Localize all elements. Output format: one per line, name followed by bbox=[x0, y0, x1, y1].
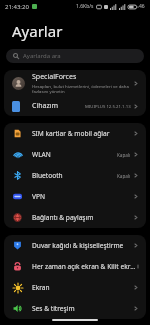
staticText: Kapalı bbox=[117, 173, 131, 179]
button[interactable]: Ekran bbox=[4, 277, 146, 298]
staticText: Kapalı bbox=[117, 152, 131, 158]
other: Aç bbox=[134, 193, 138, 200]
staticText: Duvar kağıdı & kişiselleştirme bbox=[32, 241, 124, 250]
button[interactable]: Ses & titreşim bbox=[4, 298, 146, 319]
staticText: Cihazım bbox=[32, 101, 59, 111]
staticText: Ses & titreşim bbox=[32, 304, 75, 313]
other: Aç bbox=[134, 172, 138, 179]
other: Aç bbox=[134, 151, 138, 158]
staticText: 46 bbox=[139, 3, 145, 10]
staticText: WLAN bbox=[32, 150, 51, 159]
staticText: Bağlantı & paylaşım bbox=[32, 213, 94, 222]
staticText: MIUIPLUS 12.5.21.1.13 bbox=[85, 103, 131, 109]
other: Aç bbox=[134, 130, 138, 137]
button[interactable]: Duvar kağıdı & kişiselleştirme bbox=[4, 235, 146, 256]
button[interactable]: VPN bbox=[4, 186, 146, 207]
other: Aç bbox=[134, 284, 138, 291]
button[interactable]: Ayarlarda ara bbox=[6, 49, 144, 63]
other: Aç bbox=[134, 80, 138, 87]
staticText: SIM kartlar & mobil ağlar bbox=[32, 129, 110, 138]
staticText: 21:43:20 bbox=[5, 3, 29, 11]
button[interactable]: Bluetooth bbox=[4, 165, 146, 186]
staticText: 1.6Kb/s bbox=[76, 3, 94, 10]
button[interactable]: SIM kartlar & mobil ağlar bbox=[4, 123, 146, 144]
other: Aç bbox=[134, 305, 138, 312]
staticText: Ayarlarda ara bbox=[23, 52, 61, 60]
button[interactable]: WLAN bbox=[4, 144, 146, 165]
staticText: VPN bbox=[32, 192, 45, 201]
button[interactable]: Bağlantı & paylaşım bbox=[4, 207, 146, 228]
staticText: SpecialForces bbox=[32, 72, 77, 82]
button[interactable]: Her zaman açık ekran & Kilit ekranı bbox=[4, 256, 146, 277]
other: Aç bbox=[134, 242, 138, 249]
staticText: Bluetooth bbox=[32, 171, 63, 180]
staticText: Ayarlar bbox=[12, 21, 63, 41]
button[interactable]: Cihazım bbox=[4, 96, 146, 116]
other: Aç bbox=[134, 214, 138, 221]
staticText: Her zaman açık ekran & Kilit ekranı bbox=[32, 262, 138, 271]
button[interactable]: SpecialForces bbox=[4, 70, 146, 96]
other: Aç bbox=[134, 103, 138, 110]
staticText: Hesapları, bulut hizmetlerini, ödemeleri… bbox=[32, 83, 130, 95]
staticText: Ekran bbox=[32, 283, 50, 292]
